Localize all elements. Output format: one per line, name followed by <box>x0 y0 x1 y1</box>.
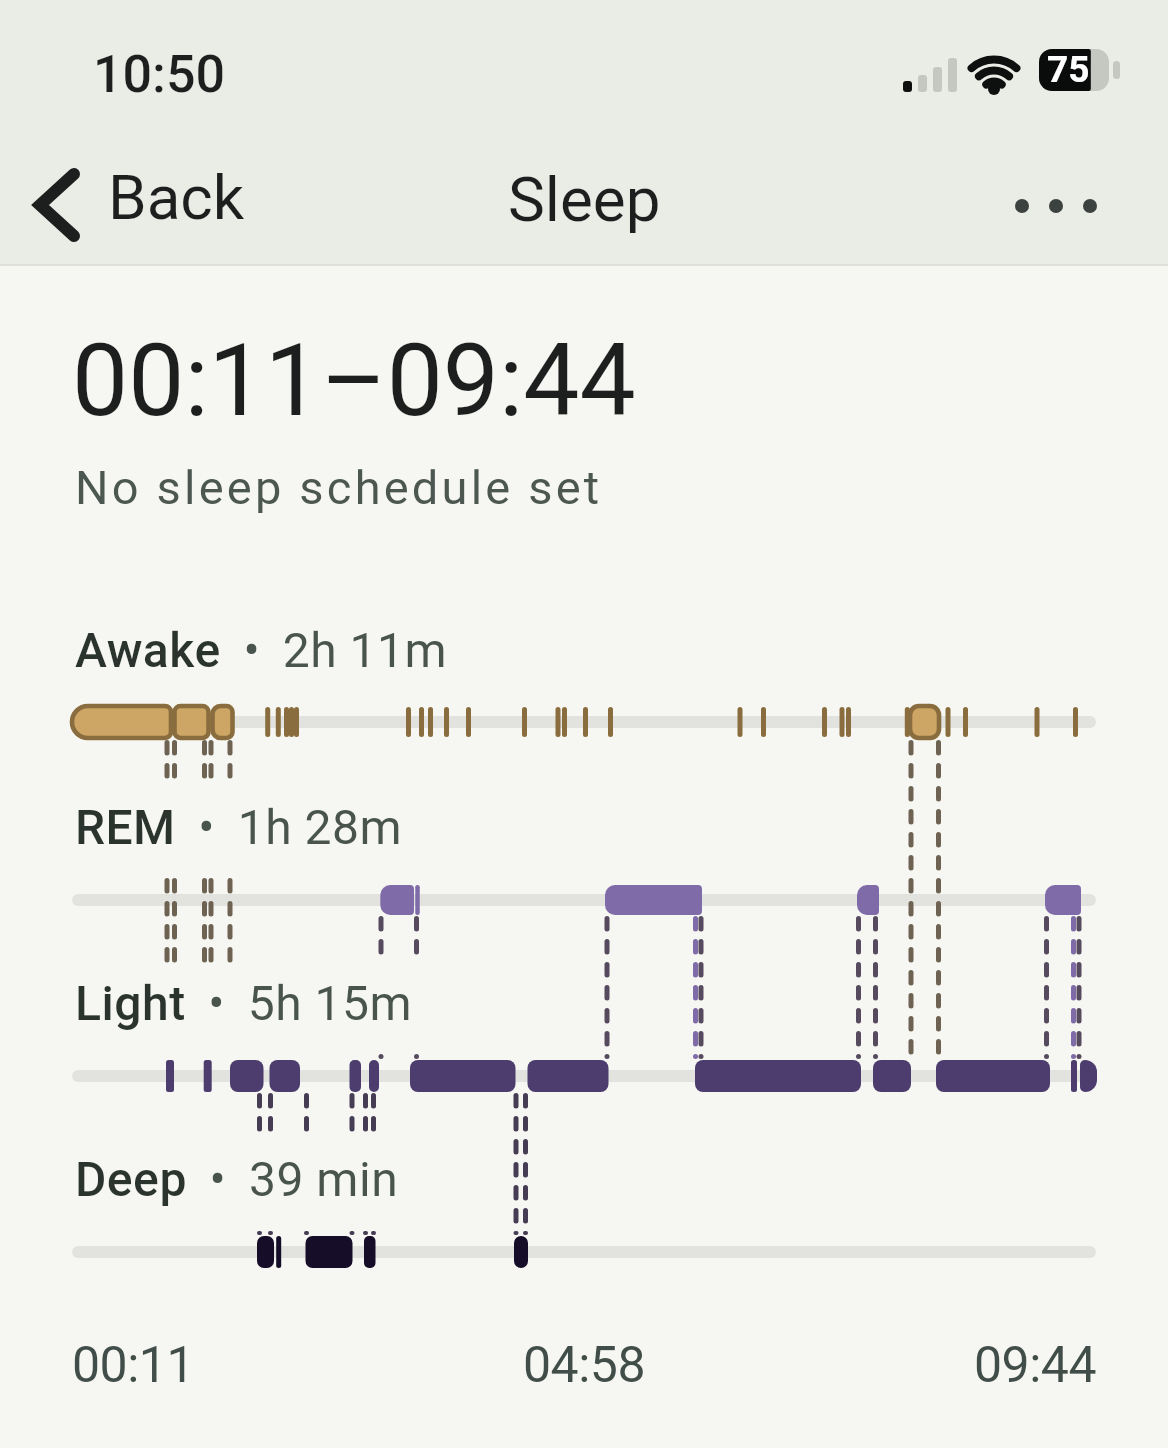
staticText: 00:11–09:44 <box>72 322 636 439</box>
staticText: No sleep schedule set <box>75 460 603 515</box>
staticText: 00:11 <box>72 1336 195 1395</box>
staticText: 10:50 <box>93 44 226 105</box>
staticText: 75 <box>1047 48 1090 91</box>
staticText: Sleep <box>508 163 661 236</box>
button[interactable] <box>1000 170 1110 240</box>
staticText: Back <box>108 161 245 234</box>
button[interactable]: Back <box>24 155 254 250</box>
staticText: Deep • 39 min <box>75 1151 399 1207</box>
staticText: Awake • 2h 11m <box>75 622 448 678</box>
staticText: Light • 5h 15m <box>75 975 413 1031</box>
staticText: 04:58 <box>523 1336 646 1395</box>
staticText: REM • 1h 28m <box>75 799 403 855</box>
staticText: 09:44 <box>974 1336 1097 1395</box>
